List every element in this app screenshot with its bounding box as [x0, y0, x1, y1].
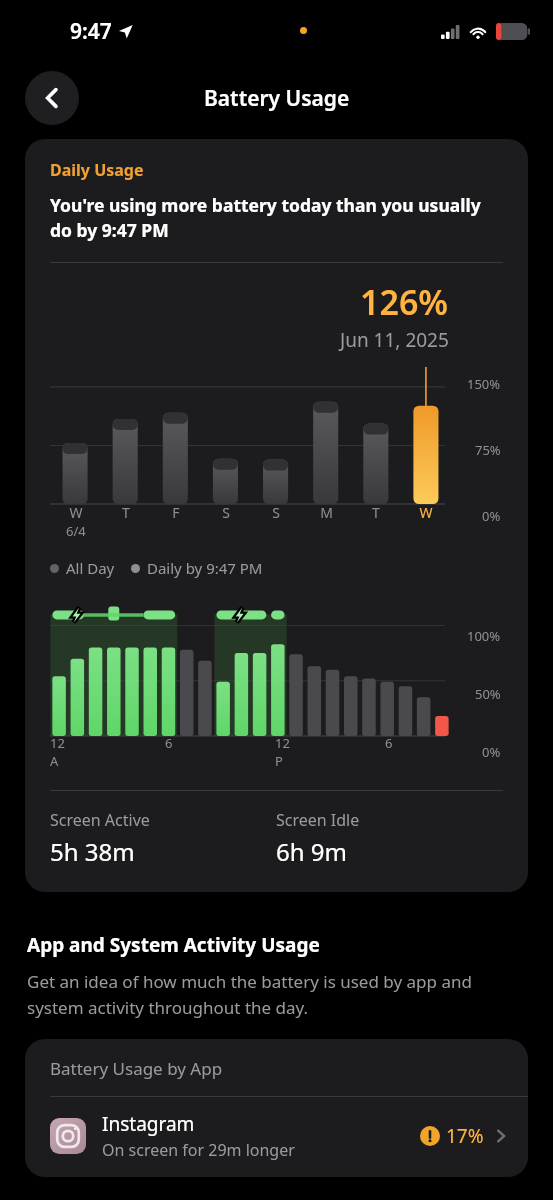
- staticText: 150%: [467, 375, 501, 393]
- button[interactable]: Daily Usage: [25, 139, 528, 892]
- staticText: W: [419, 503, 433, 522]
- staticText: 126%: [360, 279, 449, 325]
- staticText: M: [320, 503, 333, 522]
- staticText: Battery Usage by App: [50, 1057, 223, 1080]
- staticText: 6: [165, 734, 173, 752]
- staticText: Instagram: [102, 1111, 195, 1137]
- staticText: F: [172, 503, 180, 522]
- staticText: Screen Idle: [276, 809, 360, 831]
- staticText: 5h 38m: [50, 835, 135, 868]
- staticText: 6: [385, 734, 393, 752]
- staticText: Daily by 9:47 PM: [147, 558, 263, 578]
- staticText: Screen Active: [50, 809, 150, 831]
- staticText: All Day: [66, 558, 115, 578]
- staticText: 6/4: [66, 522, 86, 540]
- staticText: 100%: [467, 627, 501, 645]
- staticText: T: [122, 503, 130, 522]
- button[interactable]: Back: [25, 71, 79, 125]
- staticText: W: [69, 503, 83, 522]
- staticText: App and System Activity Usage: [27, 932, 320, 958]
- staticText: Battery Usage: [204, 84, 350, 113]
- staticText: 75%: [475, 441, 501, 459]
- staticText: Daily Usage: [50, 159, 144, 181]
- staticText: T: [372, 503, 380, 522]
- button[interactable]: Instagram: [25, 1097, 528, 1177]
- staticText: On screen for 29m longer: [102, 1139, 295, 1161]
- staticText: 17%: [446, 1123, 484, 1149]
- staticText: 0%: [482, 507, 501, 525]
- staticText: S: [272, 503, 280, 522]
- staticText: Get an idea of how much the battery is u…: [27, 970, 526, 1019]
- staticText: You're using more battery today than you…: [50, 193, 503, 242]
- staticText: 6h 9m: [276, 835, 347, 868]
- staticText: 12 P: [275, 734, 297, 770]
- staticText: 0%: [482, 743, 501, 761]
- staticText: 9:47: [70, 17, 112, 46]
- staticText: S: [222, 503, 230, 522]
- staticText: 12 A: [50, 734, 73, 770]
- staticText: Jun 11, 2025: [340, 327, 449, 353]
- staticText: 50%: [475, 685, 501, 703]
